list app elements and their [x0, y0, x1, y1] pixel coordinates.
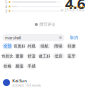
button[interactable]: 音质好	[14, 43, 24, 49]
button[interactable]: 做工好	[38, 53, 50, 59]
button[interactable]: 降噪	[52, 43, 64, 49]
button[interactable]: 重量	[14, 53, 24, 59]
button[interactable]: 撰写评论	[0, 21, 90, 28]
staticText: 全部	[3, 44, 11, 48]
staticText: 价格	[3, 64, 11, 68]
button[interactable]: 全部	[2, 43, 12, 49]
button[interactable]: 低音	[52, 53, 64, 59]
staticText: Kai Sun	[12, 78, 27, 83]
button[interactable]: 轻便	[66, 43, 76, 49]
staticText: 颜值	[15, 64, 23, 68]
staticText: 共 25.6万 个评分	[61, 8, 85, 12]
staticText: 4.6	[65, 0, 85, 13]
button[interactable]: 舒适	[26, 53, 36, 59]
staticText: 低音	[54, 54, 62, 58]
staticText: 5	[5, 0, 7, 5]
staticText: 重量	[15, 54, 23, 58]
button[interactable]: 手感	[26, 63, 36, 69]
staticText: 外观	[27, 44, 35, 48]
staticText: 撰写评论	[39, 22, 55, 27]
button[interactable]: 性价比	[2, 53, 12, 59]
button[interactable]: 价格	[2, 63, 12, 69]
staticText: 3	[5, 8, 7, 14]
button[interactable]: 蓝牙	[66, 53, 76, 59]
button[interactable]: 颜值	[14, 63, 24, 69]
staticText: 性价比	[1, 54, 13, 58]
staticText: 音质好	[13, 44, 25, 48]
staticText: 蓝牙	[67, 54, 75, 58]
staticText: 4	[5, 4, 7, 9]
staticText: 做工好	[38, 54, 50, 58]
staticText: 取消	[70, 35, 78, 40]
staticText: 手感	[27, 64, 35, 68]
button[interactable]: 续航	[38, 43, 50, 49]
staticText: 轻便	[67, 44, 75, 48]
staticText: 续航	[40, 44, 48, 48]
button[interactable]: 外观	[26, 43, 36, 49]
staticText: marshall	[5, 35, 21, 40]
staticText: 舒适	[27, 54, 35, 58]
button[interactable]: 取消	[68, 34, 79, 41]
staticText: 在官网买 164 的价格	[12, 84, 41, 87]
staticText: 降噪	[54, 44, 62, 48]
